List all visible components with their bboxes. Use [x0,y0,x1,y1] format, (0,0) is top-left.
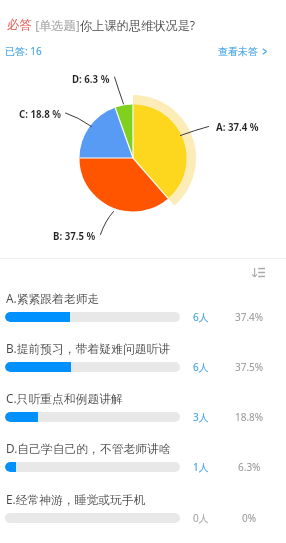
staticText: 6人 [193,360,209,374]
staticText: 6人 [193,310,209,324]
staticText: 6.3% [238,460,261,474]
staticText: 37.4% [235,310,264,324]
staticText: [单选题] [32,17,80,34]
staticText: 37.5% [235,360,264,374]
staticText: B: 37.5 % [53,230,96,243]
staticText: 查看未答 [218,45,258,58]
button[interactable]: B.提前预习，带着疑难问题听讲 [0,340,286,380]
staticText: D: 6.3 % [72,73,110,86]
button[interactable]: A.紧紧跟着老师走 [0,290,286,330]
staticText: 你上课的思维状况是? [80,17,195,34]
staticText: 3人 [193,410,209,424]
staticText: 0人 [193,511,209,525]
staticText: A.紧紧跟着老师走 [6,290,100,306]
staticText: 0% [242,511,257,525]
staticText: D.自己学自己的，不管老师讲啥 [6,440,171,456]
button[interactable]: Sort [245,262,271,282]
staticText: 18.8% [235,410,264,424]
button[interactable]: 查看未答 [218,45,268,58]
staticText: E.经常神游，睡觉或玩手机 [6,491,146,507]
staticText: B.提前预习，带着疑难问题听讲 [6,340,171,356]
staticText: A: 37.4 % [216,121,259,134]
button[interactable]: D.自己学自己的，不管老师讲啥 [0,440,286,480]
staticText: 1人 [193,460,209,474]
staticText: C.只听重点和例题讲解 [6,390,123,406]
staticText: 已答: 16 [5,44,42,58]
button[interactable]: E.经常神游，睡觉或玩手机 [0,491,286,531]
staticText: 必答 [7,17,32,32]
button[interactable]: C.只听重点和例题讲解 [0,390,286,430]
staticText: C: 18.8 % [19,108,62,121]
